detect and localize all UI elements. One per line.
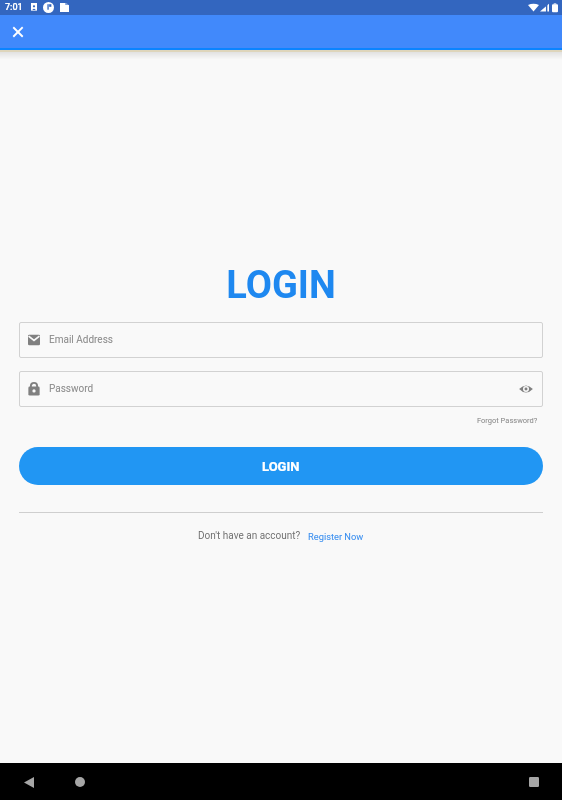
staticText: Password [49,383,94,395]
staticText: LOGIN [262,459,300,474]
button[interactable]: Home [69,771,91,793]
button[interactable]: Email Address [19,322,543,358]
button[interactable]: Show password [515,377,537,401]
button[interactable]: Recents [523,771,545,793]
staticText: Don't have an account? [198,530,301,542]
staticText: Register Now [308,531,364,542]
staticText: LOGIN [0,263,562,308]
button[interactable]: LOGIN [19,447,543,485]
button[interactable]: Register Now [308,531,364,542]
button[interactable]: Back [18,771,40,793]
button[interactable]: Close [4,18,32,46]
staticText: Forgot Password? [477,416,538,425]
button[interactable]: Forgot Password? [471,411,544,430]
staticText: 7:01 [5,2,23,13]
staticText: Email Address [49,334,113,346]
button[interactable]: Password [19,371,543,407]
